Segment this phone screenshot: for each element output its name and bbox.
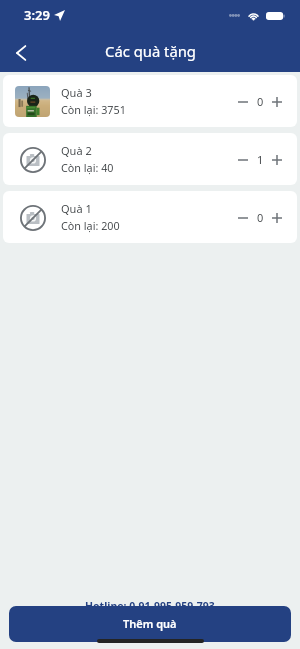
staticText: Còn lại: 200 <box>61 218 120 233</box>
staticText: Thêm quà <box>123 616 177 631</box>
button[interactable]: Decrease <box>233 146 253 172</box>
button[interactable]: Increase <box>267 146 287 172</box>
staticText: 0 <box>257 210 264 225</box>
staticText: Quà 3 <box>61 85 92 100</box>
staticText: Các quà tặng <box>105 41 196 61</box>
staticText: 0 <box>257 94 264 109</box>
button[interactable]: Quà 3 <box>3 75 297 127</box>
staticText: Hotline: 0-91-995-959-793 <box>85 599 215 613</box>
button[interactable]: Increase <box>267 204 287 230</box>
button[interactable]: Increase <box>267 88 287 114</box>
button[interactable]: Quà 1 <box>3 191 297 243</box>
staticText: 3:29 <box>24 6 50 24</box>
staticText: Còn lại: 40 <box>61 160 114 175</box>
staticText: Quà 2 <box>61 143 92 158</box>
button[interactable]: Back <box>0 30 42 72</box>
staticText: 1 <box>257 152 264 167</box>
button[interactable]: Thêm quà <box>9 606 291 642</box>
staticText: Quà 1 <box>61 201 92 216</box>
button[interactable]: Quà 2 <box>3 133 297 185</box>
staticText: Còn lại: 3751 <box>61 102 126 117</box>
button[interactable]: Decrease <box>233 204 253 230</box>
button[interactable]: Decrease <box>233 88 253 114</box>
